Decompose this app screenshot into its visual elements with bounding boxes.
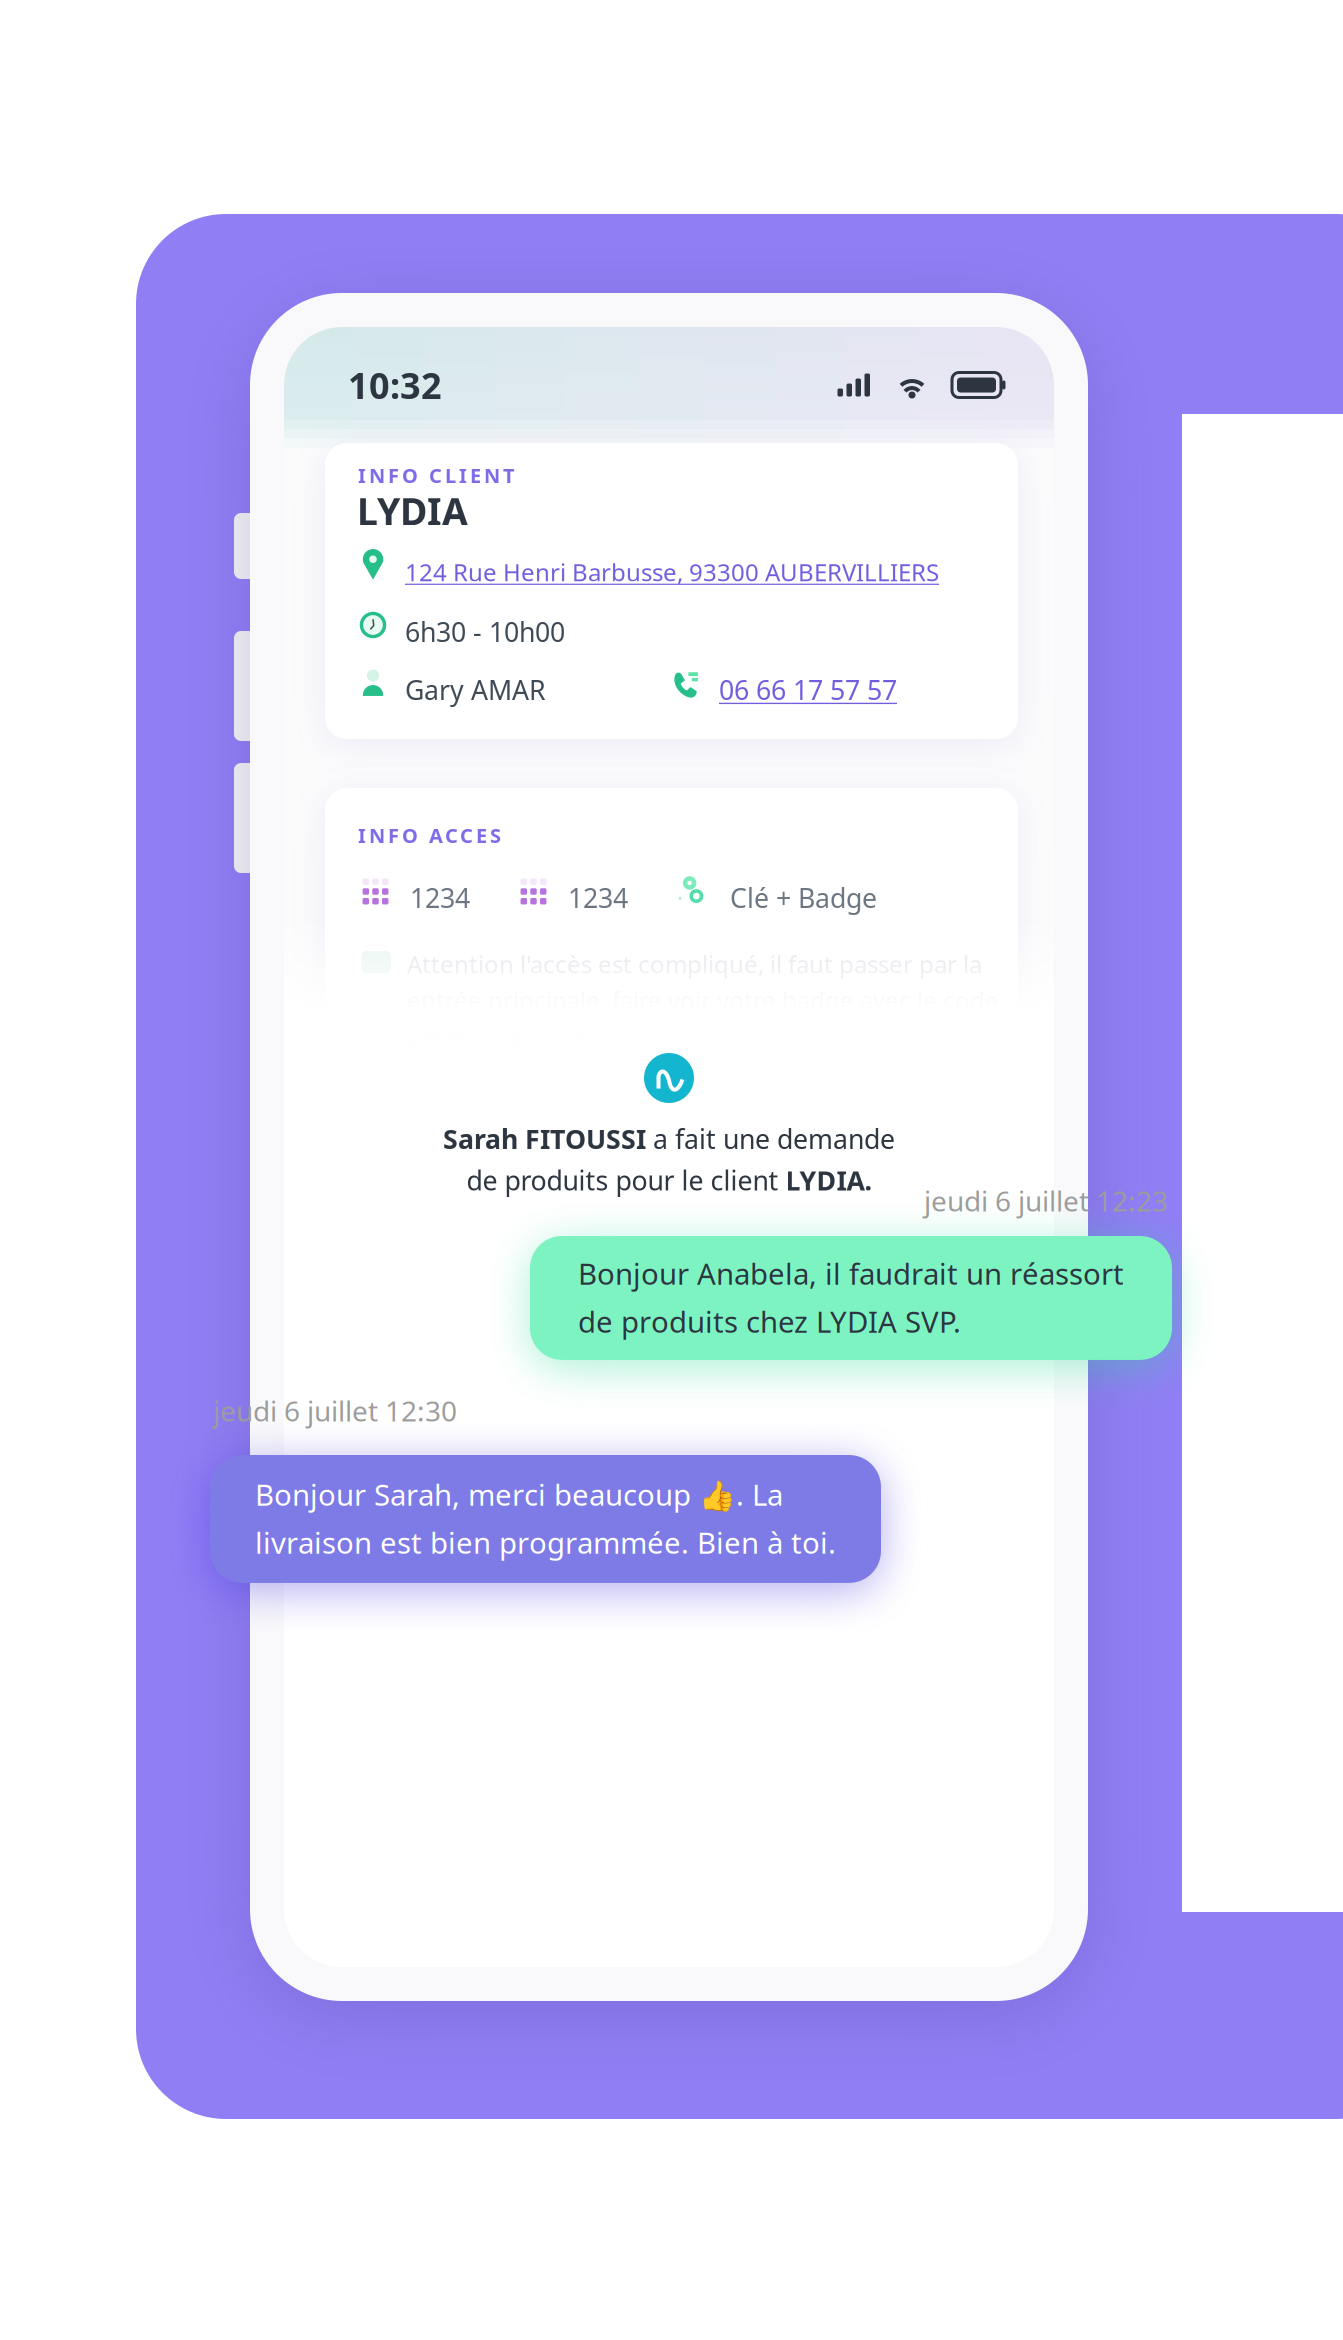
staticText: 10:32	[348, 361, 442, 409]
staticText: INFO CLIENT	[358, 462, 515, 489]
staticText: jeudi 6 juillet 12:23	[924, 1182, 1168, 1219]
staticText: 6h30 - 10h00	[405, 614, 565, 649]
staticText: de produits pour le client LYDIA.	[466, 1162, 871, 1198]
staticText: Attention l'accès est compliqué, il faut…	[407, 948, 1005, 1052]
staticText: 1234	[410, 880, 470, 915]
staticText: INFO ACCES	[358, 822, 501, 849]
staticText: Gary AMAR	[405, 672, 546, 707]
staticText: Bonjour Sarah, merci beaucoup 👍. La livr…	[255, 1475, 836, 1562]
staticText: jeudi 6 juillet 12:30	[213, 1392, 457, 1429]
staticText: Bonjour Anabela, il faudrait un réassort…	[578, 1254, 1124, 1341]
button[interactable]: 124 Rue Henri Barbusse, 93300 AUBERVILLI…	[401, 552, 943, 592]
staticText: 1234	[568, 880, 628, 915]
staticText: 06 66 17 57 57	[719, 672, 897, 707]
staticText: 124 Rue Henri Barbusse, 93300 AUBERVILLI…	[405, 556, 939, 588]
staticText: LYDIA	[357, 486, 468, 536]
staticText: Clé + Badge	[730, 880, 877, 915]
button[interactable]: 06 66 17 57 57	[715, 668, 901, 711]
staticText: Sarah FITOUSSI a fait une demande	[443, 1121, 895, 1156]
